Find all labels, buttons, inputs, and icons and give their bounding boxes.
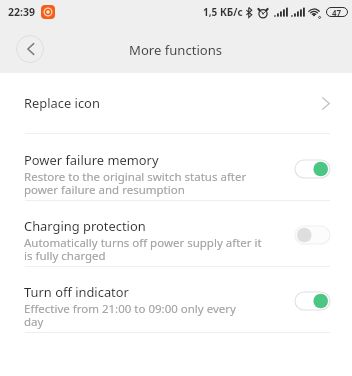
staticText: 47 [332,7,342,17]
staticText: Restore to the original switch status af… [24,169,247,198]
button[interactable]: Switch on [295,160,330,178]
staticText: Turn off indicator [24,283,129,301]
button[interactable]: Replace icon [0,73,352,133]
button[interactable]: Back [16,35,44,63]
button[interactable]: Switch off [295,226,330,244]
staticText: Charging protection [24,217,146,235]
staticText: Effective from 21:00 to 09:00 only every… [24,301,236,330]
staticText: More functions [129,41,223,59]
button[interactable]: Power failure memory [0,134,352,200]
staticText: Automatically turns off power supply aft… [24,235,262,264]
staticText: Power failure memory [24,151,159,169]
button[interactable]: Switch on [295,292,330,310]
button[interactable]: Turn off indicator [0,267,352,332]
staticText: Replace icon [24,94,100,112]
button[interactable]: Charging protection [0,201,352,266]
staticText: 1,5 КБ/с [203,5,243,19]
staticText: 22:39 [8,5,35,19]
